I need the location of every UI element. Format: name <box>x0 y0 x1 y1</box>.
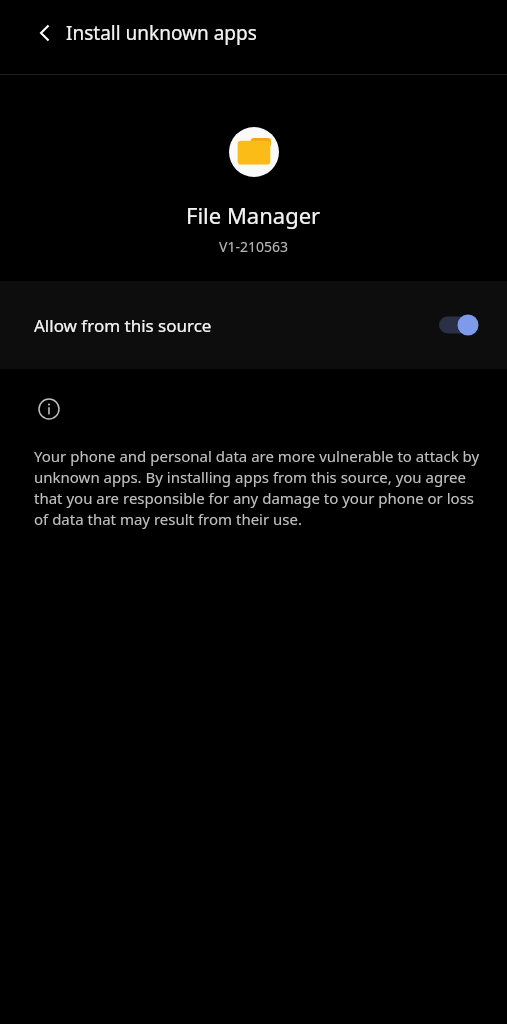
button[interactable]: Back <box>24 12 66 54</box>
staticText: Your phone and personal data are more vu… <box>34 446 483 530</box>
button[interactable]: Allow from this source <box>0 281 507 369</box>
staticText: File Manager <box>186 200 321 230</box>
staticText: V1-210563 <box>219 237 288 256</box>
staticText: Allow from this source <box>34 314 212 337</box>
staticText: Install unknown apps <box>66 20 257 46</box>
